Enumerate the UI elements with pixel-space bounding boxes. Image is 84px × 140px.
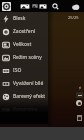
staticText: Panorama	[13, 106, 38, 113]
staticText: Vyvážení bílé	[13, 80, 44, 87]
button[interactable]: Gallery	[77, 115, 82, 121]
button[interactable]: Search	[51, 2, 59, 10]
button[interactable]: Barevný efekt	[0, 90, 48, 103]
button[interactable]: Gallery	[39, 2, 47, 10]
button[interactable]: Vyvážení bílé	[0, 77, 48, 90]
staticText: Barevný efekt	[13, 93, 46, 100]
staticText: Velikost	[13, 41, 32, 48]
staticText: Blesk	[13, 15, 26, 22]
button[interactable]: ISO	[0, 64, 48, 77]
button[interactable]: Zaostření	[0, 25, 48, 38]
staticText: Režim scény	[13, 54, 42, 61]
button[interactable]: Shutter	[76, 100, 82, 106]
staticText: 25/25	[68, 15, 79, 20]
button[interactable]: Screenshot	[20, 2, 30, 10]
staticText: ISO	[13, 67, 22, 74]
button[interactable]: Settings	[1, 1, 12, 12]
button[interactable]: Blesk	[0, 12, 48, 25]
button[interactable]: Weather	[70, 2, 80, 12]
button[interactable]: Flash mode	[76, 84, 83, 91]
button[interactable]: Panorama	[0, 103, 48, 116]
button[interactable]: Download	[31, 2, 38, 10]
staticText: Zaostření	[13, 28, 36, 35]
button[interactable]: Režim scény	[0, 51, 48, 64]
button[interactable]: Camera mode	[76, 92, 83, 98]
button[interactable]: Velikost	[0, 38, 48, 51]
